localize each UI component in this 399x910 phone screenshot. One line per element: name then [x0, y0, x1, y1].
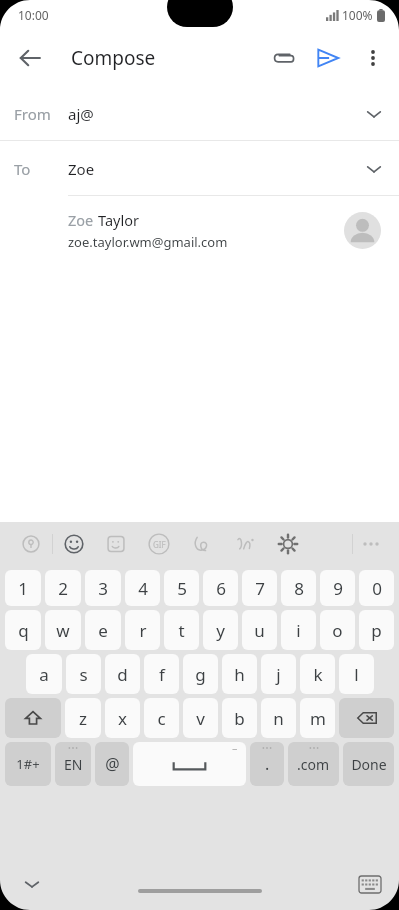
button[interactable]: s [66, 654, 101, 694]
staticText: p [371, 619, 382, 642]
staticText: r [139, 619, 147, 642]
button[interactable]: m [300, 698, 335, 738]
button[interactable]: 5 [164, 570, 199, 606]
staticText: k [313, 663, 323, 686]
staticText: b [234, 707, 245, 730]
button[interactable]: 4 [125, 570, 160, 606]
staticText: t [178, 619, 185, 642]
button[interactable]: Done [343, 742, 394, 786]
button[interactable]: Backspace [339, 698, 394, 738]
staticText: 10:00 [18, 7, 49, 23]
staticText: .com [297, 755, 330, 774]
staticText: o [332, 619, 343, 642]
button[interactable]: 1 [5, 570, 41, 606]
staticText: 100% [342, 7, 373, 23]
button[interactable]: r [125, 610, 160, 650]
button[interactable]: 7 [242, 570, 277, 606]
button[interactable]: To [0, 141, 399, 196]
button[interactable]: q [5, 610, 41, 650]
button[interactable]: n [261, 698, 296, 738]
button[interactable]: Scribble [223, 522, 266, 566]
staticText: m [310, 707, 326, 730]
staticText: To [14, 159, 31, 179]
button[interactable]: @ [95, 742, 129, 786]
staticText: y [216, 619, 225, 642]
button[interactable]: l [339, 654, 374, 694]
button[interactable]: k [300, 654, 335, 694]
button[interactable]: Switch keyboard [353, 867, 387, 901]
button[interactable]: . [250, 742, 284, 786]
staticText: w [56, 619, 70, 642]
staticText: 7 [255, 577, 265, 600]
staticText: 9 [333, 577, 343, 600]
staticText: z [79, 707, 87, 730]
button[interactable]: x [105, 698, 140, 738]
button[interactable]: w [45, 610, 81, 650]
button[interactable]: More keyboard options [353, 522, 389, 566]
staticText: 6 [216, 577, 226, 600]
staticText: c [157, 707, 166, 730]
button[interactable]: i [281, 610, 316, 650]
staticText: d [117, 663, 128, 686]
button[interactable]: 0 [359, 570, 394, 606]
button[interactable]: c [144, 698, 179, 738]
button[interactable]: Keyboard settings [266, 522, 309, 566]
button[interactable]: 8 [281, 570, 316, 606]
button[interactable]: 9 [320, 570, 355, 606]
button[interactable]: f [144, 654, 179, 694]
button[interactable]: 3 [85, 570, 121, 606]
staticText: x [118, 707, 127, 730]
button[interactable]: Stickers [95, 522, 137, 566]
staticText: Taylor [98, 210, 139, 230]
button[interactable]: Send [305, 35, 351, 81]
button[interactable]: GIF [137, 522, 180, 566]
staticText: 1 [18, 577, 28, 600]
button[interactable]: v [183, 698, 218, 738]
staticText: 0 [372, 577, 382, 600]
button[interactable]: t [164, 610, 199, 650]
button[interactable]: Space [133, 742, 246, 786]
button[interactable]: 2 [45, 570, 81, 606]
button[interactable]: o [320, 610, 355, 650]
button[interactable]: e [85, 610, 121, 650]
button[interactable]: Attach file [261, 36, 305, 80]
staticText: 3 [98, 577, 108, 600]
button[interactable]: b [222, 698, 257, 738]
button[interactable]: Emoji [53, 522, 95, 566]
button[interactable]: a [26, 654, 62, 694]
staticText: g [195, 663, 206, 686]
staticText: 2 [58, 577, 68, 600]
button[interactable]: Back [6, 34, 54, 82]
staticText: @ [105, 753, 120, 775]
button[interactable]: Shift [5, 698, 61, 738]
staticText: 8 [294, 577, 304, 600]
staticText: l [354, 663, 359, 686]
button[interactable]: EN [55, 742, 91, 786]
button[interactable]: g [183, 654, 218, 694]
button[interactable]: z [65, 698, 101, 738]
button[interactable]: .com [288, 742, 339, 786]
staticText: From [14, 104, 51, 124]
button[interactable]: j [261, 654, 296, 694]
staticText: EN [64, 755, 83, 774]
button[interactable]: Hide keyboard [14, 866, 50, 902]
button[interactable]: u [242, 610, 277, 650]
button[interactable]: h [222, 654, 257, 694]
button[interactable]: 1#+ [5, 742, 51, 786]
button[interactable]: y [203, 610, 238, 650]
staticText: i [296, 619, 301, 642]
button[interactable]: Translate [10, 522, 52, 566]
staticText: 5 [177, 577, 187, 600]
staticText: Zoe [68, 159, 95, 179]
button[interactable]: From [0, 86, 399, 141]
staticText: u [254, 619, 265, 642]
button[interactable]: More options [351, 36, 395, 80]
button[interactable]: p [359, 610, 394, 650]
button[interactable]: d [105, 654, 140, 694]
button[interactable]: Zoe [0, 196, 399, 264]
button[interactable]: Handwriting [180, 522, 223, 566]
button[interactable]: 6 [203, 570, 238, 606]
staticText: s [79, 663, 88, 686]
staticText: v [196, 707, 205, 730]
staticText: h [234, 663, 245, 686]
